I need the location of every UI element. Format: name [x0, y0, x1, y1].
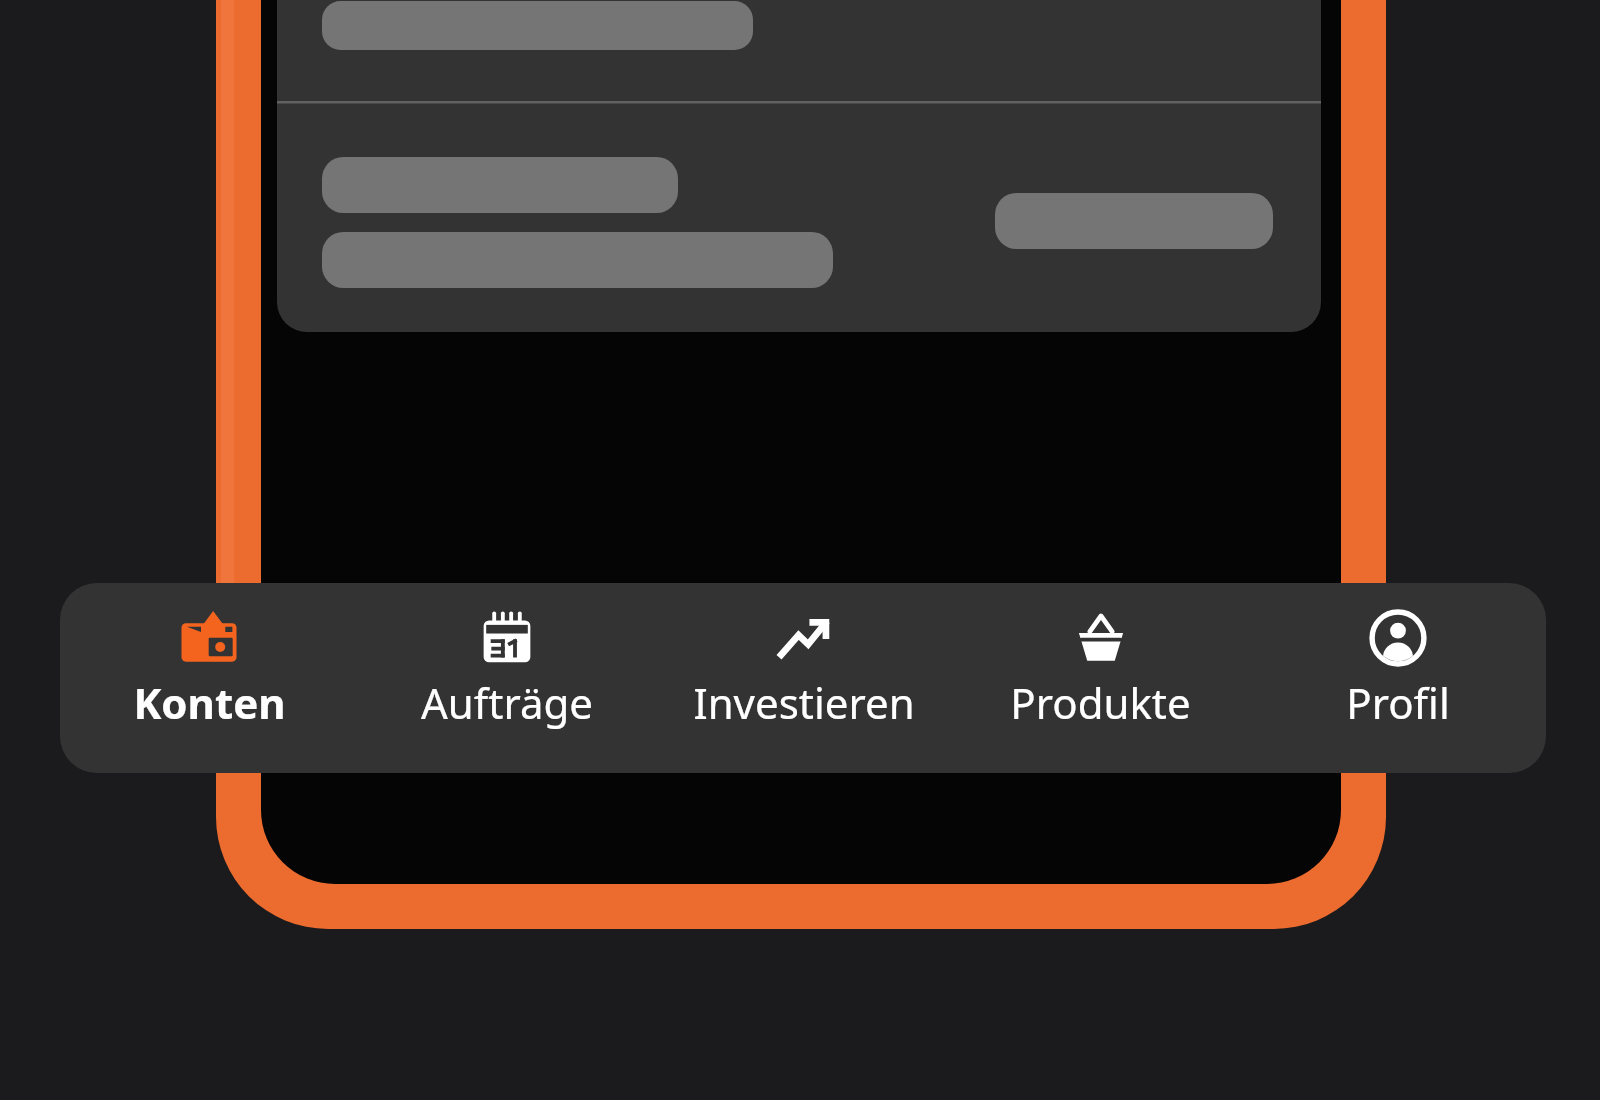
- staticText: Produkte: [1010, 674, 1191, 731]
- button[interactable]: Konten: [60, 583, 358, 773]
- button[interactable]: Aufträge: [358, 583, 655, 773]
- button[interactable]: Investieren: [655, 583, 952, 773]
- button[interactable]: Profil: [1249, 583, 1546, 773]
- staticText: Investieren: [693, 674, 915, 731]
- staticText: Profil: [1346, 674, 1450, 731]
- staticText: Konten: [133, 674, 286, 731]
- staticText: Aufträge: [421, 674, 593, 731]
- button[interactable]: Produkte: [952, 583, 1249, 773]
